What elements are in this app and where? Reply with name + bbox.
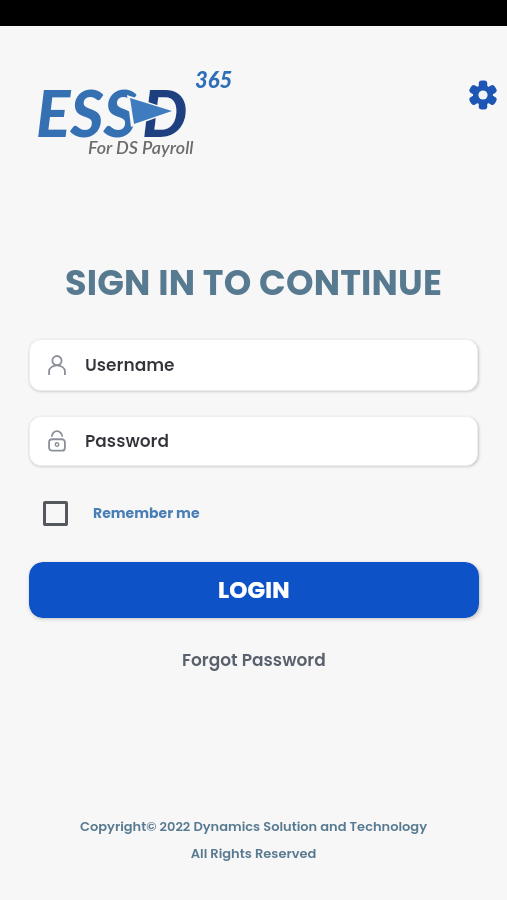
button[interactable]: LOGIN xyxy=(29,562,479,618)
staticText: For DS Payroll xyxy=(88,136,194,158)
staticText: Remember me xyxy=(93,503,200,523)
staticText: Copyright© 2022 Dynamics Solution and Te… xyxy=(0,817,507,835)
staticText: Username xyxy=(85,353,175,377)
staticText: LOGIN xyxy=(218,574,290,606)
staticText: 365 xyxy=(195,66,233,92)
staticText: ESS xyxy=(36,74,137,151)
staticText: Password xyxy=(85,429,169,453)
staticText: SIGN IN TO CONTINUE xyxy=(0,258,507,307)
button[interactable]: Password xyxy=(29,416,478,466)
staticText: Forgot Password xyxy=(182,648,326,672)
button[interactable] xyxy=(462,74,504,116)
button[interactable]: Forgot Password xyxy=(176,646,332,674)
staticText: All Rights Reserved xyxy=(0,844,507,862)
button[interactable]: Username xyxy=(29,339,478,391)
button[interactable]: Remember me xyxy=(40,495,208,531)
staticText: D xyxy=(142,74,188,151)
